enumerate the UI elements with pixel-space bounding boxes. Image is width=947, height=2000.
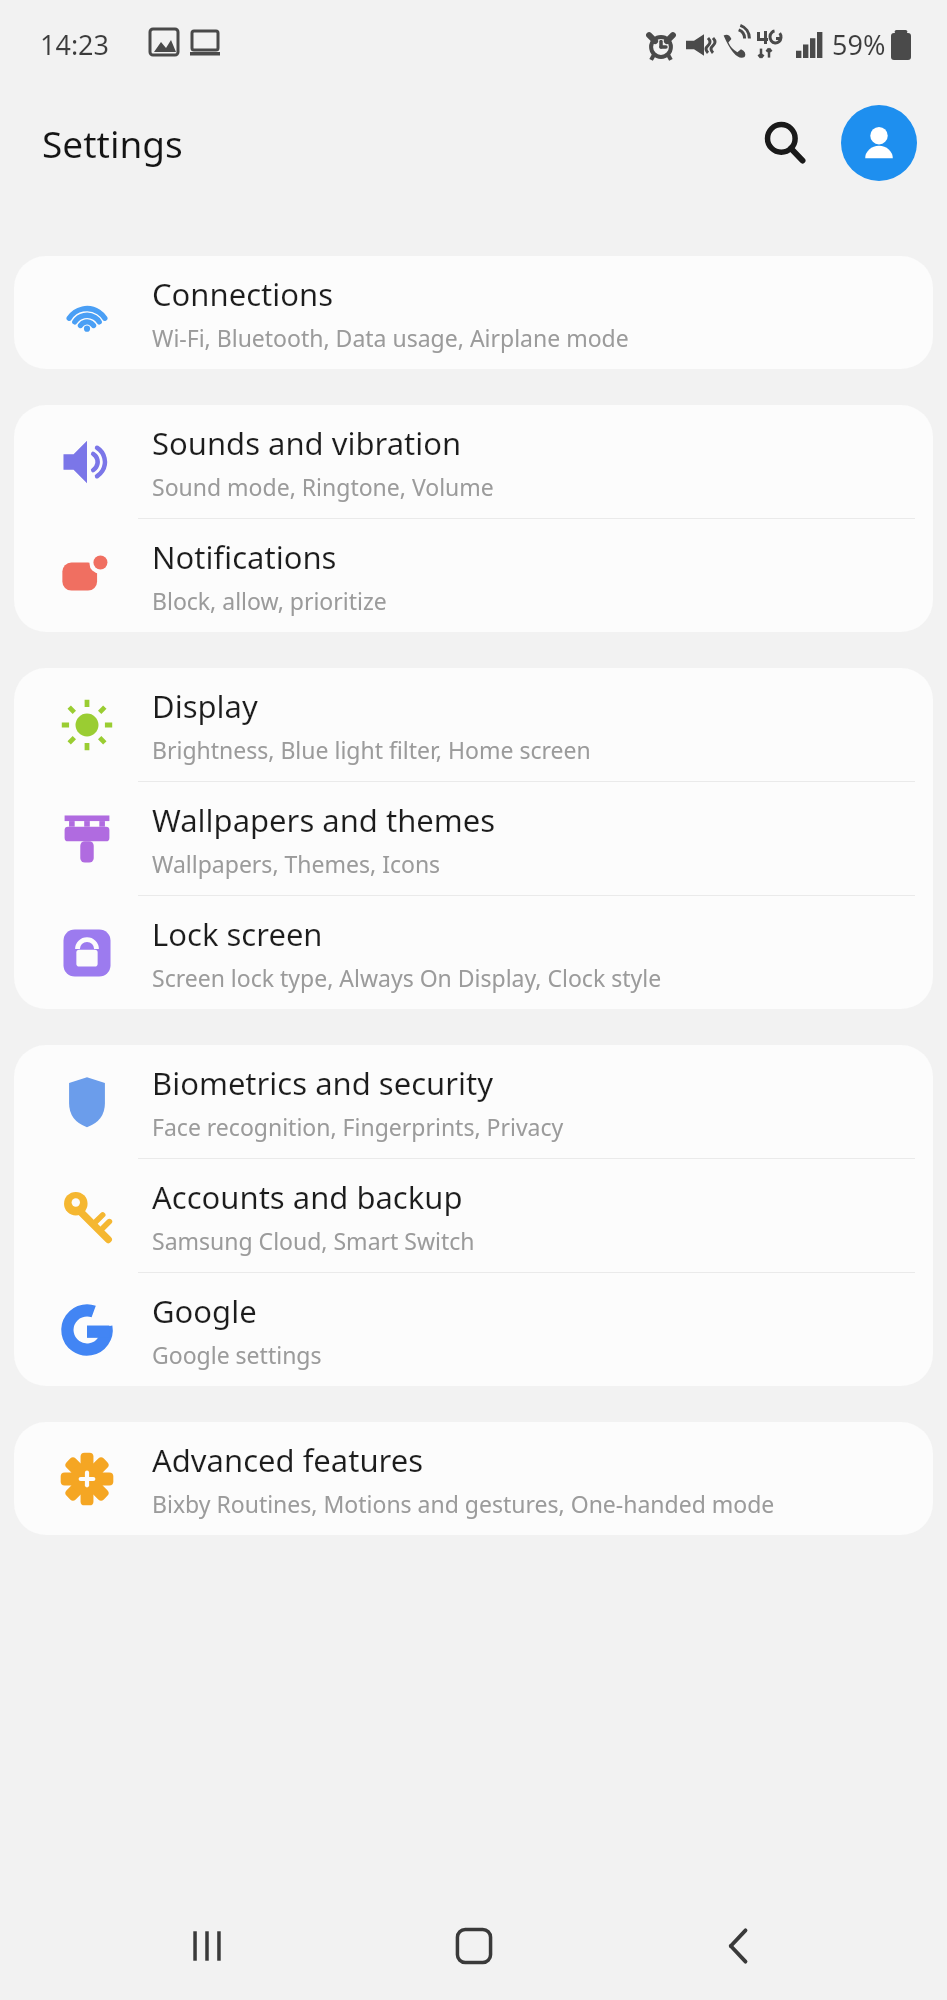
button[interactable]: Account bbox=[841, 105, 917, 181]
staticText: Samsung Cloud, Smart Switch bbox=[152, 1225, 475, 1256]
staticText: Wi-Fi, Bluetooth, Data usage, Airplane m… bbox=[152, 322, 629, 353]
button[interactable]: Accounts and backup bbox=[14, 1159, 933, 1272]
staticText: Wallpapers, Themes, Icons bbox=[152, 848, 441, 879]
button[interactable]: Back bbox=[680, 1896, 800, 1996]
button[interactable]: Sounds and vibration bbox=[14, 405, 933, 518]
button[interactable]: Search bbox=[743, 101, 827, 185]
staticText: Google bbox=[152, 1290, 257, 1332]
staticText: Block, allow, prioritize bbox=[152, 585, 387, 616]
button[interactable]: Home bbox=[414, 1896, 534, 1996]
staticText: Biometrics and security bbox=[152, 1062, 493, 1104]
button[interactable]: Lock screen bbox=[14, 896, 933, 1009]
button[interactable]: Google bbox=[14, 1273, 933, 1386]
button[interactable]: Biometrics and security bbox=[14, 1045, 933, 1158]
staticText: Brightness, Blue light filter, Home scre… bbox=[152, 734, 591, 765]
staticText: Face recognition, Fingerprints, Privacy bbox=[152, 1111, 564, 1142]
staticText: Wallpapers and themes bbox=[152, 799, 496, 841]
staticText: Google settings bbox=[152, 1339, 322, 1370]
staticText: Sound mode, Ringtone, Volume bbox=[152, 471, 494, 502]
button[interactable]: Advanced features bbox=[14, 1422, 933, 1535]
button[interactable]: Recent apps bbox=[147, 1896, 267, 1996]
staticText: Display bbox=[152, 685, 258, 727]
staticText: 14:23 bbox=[40, 26, 110, 63]
staticText: Lock screen bbox=[152, 913, 323, 955]
button[interactable]: Notifications bbox=[14, 519, 933, 632]
staticText: 59% bbox=[832, 26, 886, 63]
staticText: Advanced features bbox=[152, 1439, 424, 1481]
button[interactable]: Display bbox=[14, 668, 933, 781]
button[interactable]: Wallpapers and themes bbox=[14, 782, 933, 895]
staticText: Settings bbox=[42, 118, 183, 168]
button[interactable]: Connections bbox=[14, 256, 933, 369]
staticText: Connections bbox=[152, 273, 333, 315]
staticText: Notifications bbox=[152, 536, 337, 578]
staticText: Screen lock type, Always On Display, Clo… bbox=[152, 962, 662, 993]
staticText: Bixby Routines, Motions and gestures, On… bbox=[152, 1488, 775, 1519]
staticText: Sounds and vibration bbox=[152, 422, 462, 464]
staticText: Accounts and backup bbox=[152, 1176, 463, 1218]
